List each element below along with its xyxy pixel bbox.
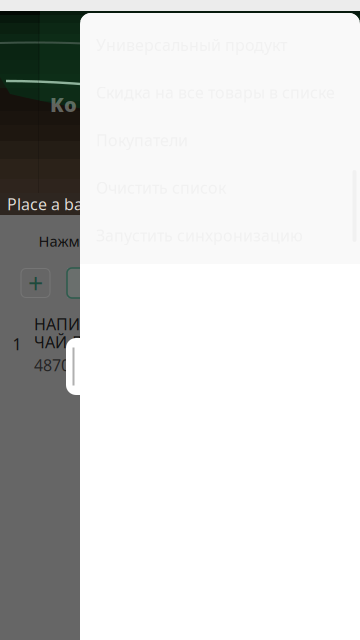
- button[interactable]: 1: [0, 315, 360, 374]
- staticText: НАПИТОК БЕЗАЛКОГОЛЬНЫЙ: [34, 313, 265, 335]
- staticText: 1: [12, 333, 21, 355]
- button[interactable]: Scan barcode: [67, 268, 131, 298]
- staticText: 4870204313871: [34, 354, 151, 376]
- staticText: +: [28, 265, 43, 301]
- staticText: Ko: [50, 91, 77, 118]
- staticText: ЧАЙ ЛИПТОН ЛИМОН 0,5Л: [34, 331, 242, 353]
- staticText: Place a barcode inside the viewfinder to…: [7, 193, 360, 215]
- button[interactable]: Add item: [21, 268, 50, 297]
- staticText: Нажмите на товар для редактирования: [38, 231, 321, 251]
